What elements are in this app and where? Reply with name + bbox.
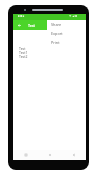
staticText: Print [51, 40, 60, 45]
staticText: Share [51, 22, 62, 27]
staticText: Test1 [19, 50, 28, 54]
button[interactable]: Print [47, 38, 86, 46]
button[interactable]: Back [62, 150, 86, 160]
staticText: Export [51, 31, 63, 36]
staticText: Test [19, 46, 26, 50]
staticText: Test2 [19, 54, 28, 58]
button[interactable]: Home [38, 150, 62, 160]
button[interactable]: Navigate up [15, 20, 23, 30]
button[interactable]: Recent apps [13, 150, 38, 160]
button[interactable]: Share [47, 20, 86, 29]
button[interactable]: Export [47, 29, 86, 38]
staticText: Test [28, 23, 35, 28]
